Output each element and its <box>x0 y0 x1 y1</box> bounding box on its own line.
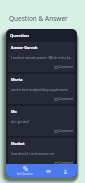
button[interactable]: Comment <box>55 161 73 165</box>
staticText: Elsabet <box>11 141 25 146</box>
button[interactable]: Anwar Garesh <box>8 42 75 72</box>
button[interactable]: Messages <box>44 167 52 175</box>
staticText: Marta <box>11 77 23 82</box>
button[interactable]: Profile <box>61 167 69 175</box>
button[interactable]: Elsabet <box>8 138 75 168</box>
staticText: Comment <box>59 161 73 165</box>
staticText: Comment <box>59 97 73 101</box>
staticText: Mo <box>11 109 17 114</box>
button[interactable]: Comment <box>55 65 73 69</box>
staticText: Anwar Garesh <box>11 45 38 50</box>
staticText: Ask Question <box>17 172 34 176</box>
staticText: Question & Answer <box>9 14 68 23</box>
staticText: Comment <box>59 65 73 69</box>
staticText: do i get abs? <box>11 120 73 124</box>
staticText: Comment <box>59 129 73 133</box>
button[interactable]: Marta <box>8 74 75 104</box>
staticText: I confirm natural protein. Which is the … <box>11 56 73 60</box>
staticText: Question <box>10 33 30 39</box>
staticText: are the best bodybuilding supplements <box>11 88 73 92</box>
button[interactable]: Ask Question <box>15 166 36 176</box>
staticText: how should i rest between set <box>11 152 73 156</box>
button[interactable]: Comment <box>55 129 73 133</box>
button[interactable]: Comment <box>55 97 73 101</box>
button[interactable]: Mo <box>8 106 75 136</box>
